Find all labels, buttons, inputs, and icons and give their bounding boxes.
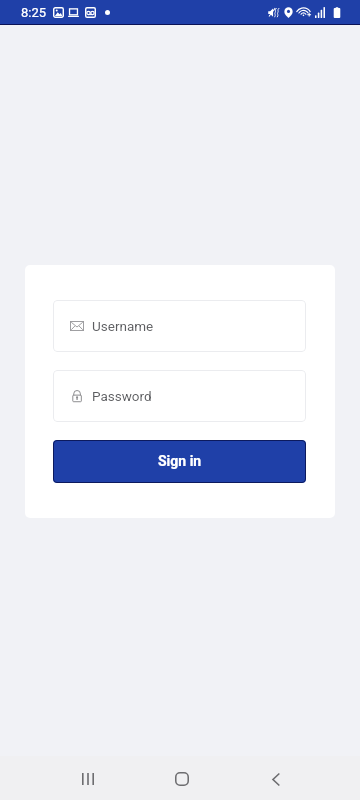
staticText: Username (92, 318, 154, 334)
button[interactable]: Username (53, 300, 306, 352)
button[interactable]: Home (154, 757, 210, 800)
staticText: Password (92, 388, 152, 404)
button[interactable]: Password (53, 370, 306, 422)
button[interactable]: Sign in (53, 440, 306, 483)
button[interactable]: Recents (60, 757, 116, 800)
staticText: Sign in (158, 453, 202, 469)
button[interactable]: Back (248, 757, 304, 800)
staticText: 8:25 (21, 5, 47, 20)
